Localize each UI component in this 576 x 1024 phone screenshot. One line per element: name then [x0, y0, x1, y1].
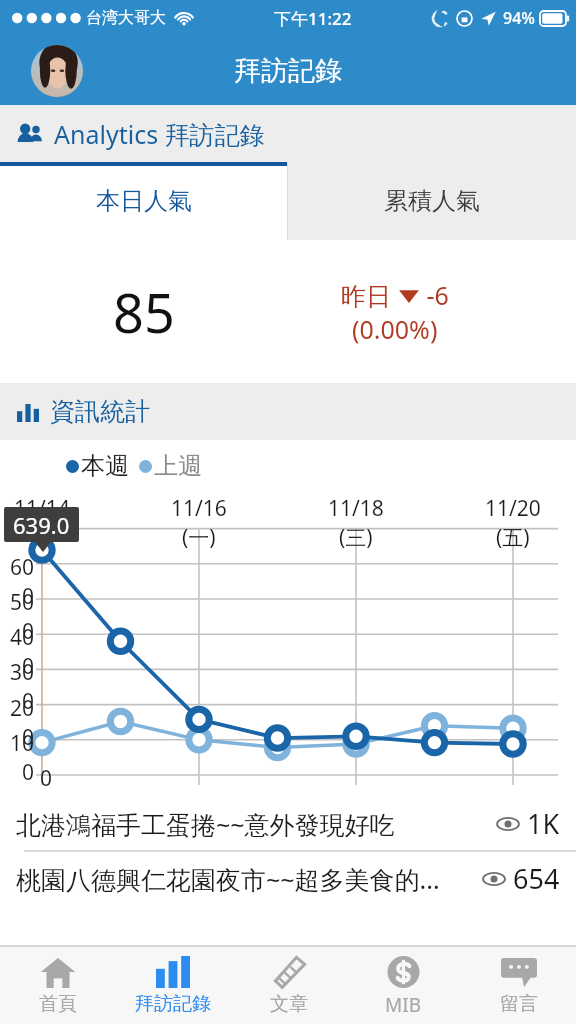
staticText: 累積人氣	[384, 186, 480, 216]
staticText: 300	[0, 658, 34, 716]
staticText: 首頁	[39, 992, 77, 1016]
staticText: (0.00%)	[352, 312, 438, 346]
staticText: 北港鴻福手工蛋捲~~意外發現好吃	[16, 807, 491, 841]
button[interactable]: 本日人氣	[0, 162, 287, 240]
staticText: 600	[0, 553, 34, 611]
staticText: 100	[0, 729, 34, 787]
staticText: 200	[0, 694, 34, 752]
staticText: 上週	[154, 451, 202, 481]
staticText: 拜訪記錄	[135, 992, 211, 1016]
button[interactable]: 桃園八德興仁花園夜市~~超多美食的...	[0, 852, 576, 905]
staticText: 85	[113, 275, 175, 349]
button[interactable]: 文章	[231, 947, 346, 1024]
staticText: 0	[18, 764, 52, 793]
staticText: 500	[0, 588, 34, 646]
staticText: 11/20	[485, 494, 541, 523]
button[interactable]: MIB	[346, 947, 461, 1024]
staticText: 本週	[81, 451, 129, 481]
button[interactable]: 首頁	[0, 947, 115, 1024]
staticText: 11/18	[328, 494, 384, 523]
staticText: (五)	[496, 523, 530, 552]
staticText: 桃園八德興仁花園夜市~~超多美食的...	[16, 862, 477, 896]
staticText: 留言	[500, 992, 538, 1016]
staticText: 11/16	[171, 494, 227, 523]
staticText: 台湾大哥大	[86, 8, 166, 28]
button[interactable]: 資訊統計	[0, 383, 576, 440]
staticText: 11/14	[14, 494, 70, 523]
staticText: 資訊統計	[50, 396, 150, 427]
staticText: 拜訪記錄	[234, 54, 342, 88]
staticText: (一)	[182, 523, 216, 552]
staticText: 下午11:22	[274, 7, 352, 30]
staticText: (三)	[339, 523, 373, 552]
staticText: 文章	[270, 992, 308, 1016]
staticText: 本日人氣	[96, 186, 192, 216]
button[interactable]: Profile	[31, 45, 83, 97]
staticText: 639.0	[13, 510, 70, 540]
staticText: 1K	[527, 805, 560, 842]
staticText: -6	[420, 278, 449, 312]
button[interactable]: 北港鴻福手工蛋捲~~意外發現好吃	[0, 797, 576, 850]
button[interactable]: 累積人氣	[288, 162, 576, 240]
staticText: MIB	[385, 992, 422, 1018]
staticText: 654	[513, 860, 560, 897]
staticText: 昨日	[341, 278, 398, 312]
staticText: Analytics 拜訪記錄	[54, 117, 265, 151]
button[interactable]: 拜訪記錄	[115, 947, 230, 1024]
button[interactable]: Analytics 拜訪記錄	[0, 105, 576, 162]
staticText: 94%	[503, 7, 535, 29]
button[interactable]: 留言	[461, 947, 576, 1024]
staticText: 400	[0, 623, 34, 681]
